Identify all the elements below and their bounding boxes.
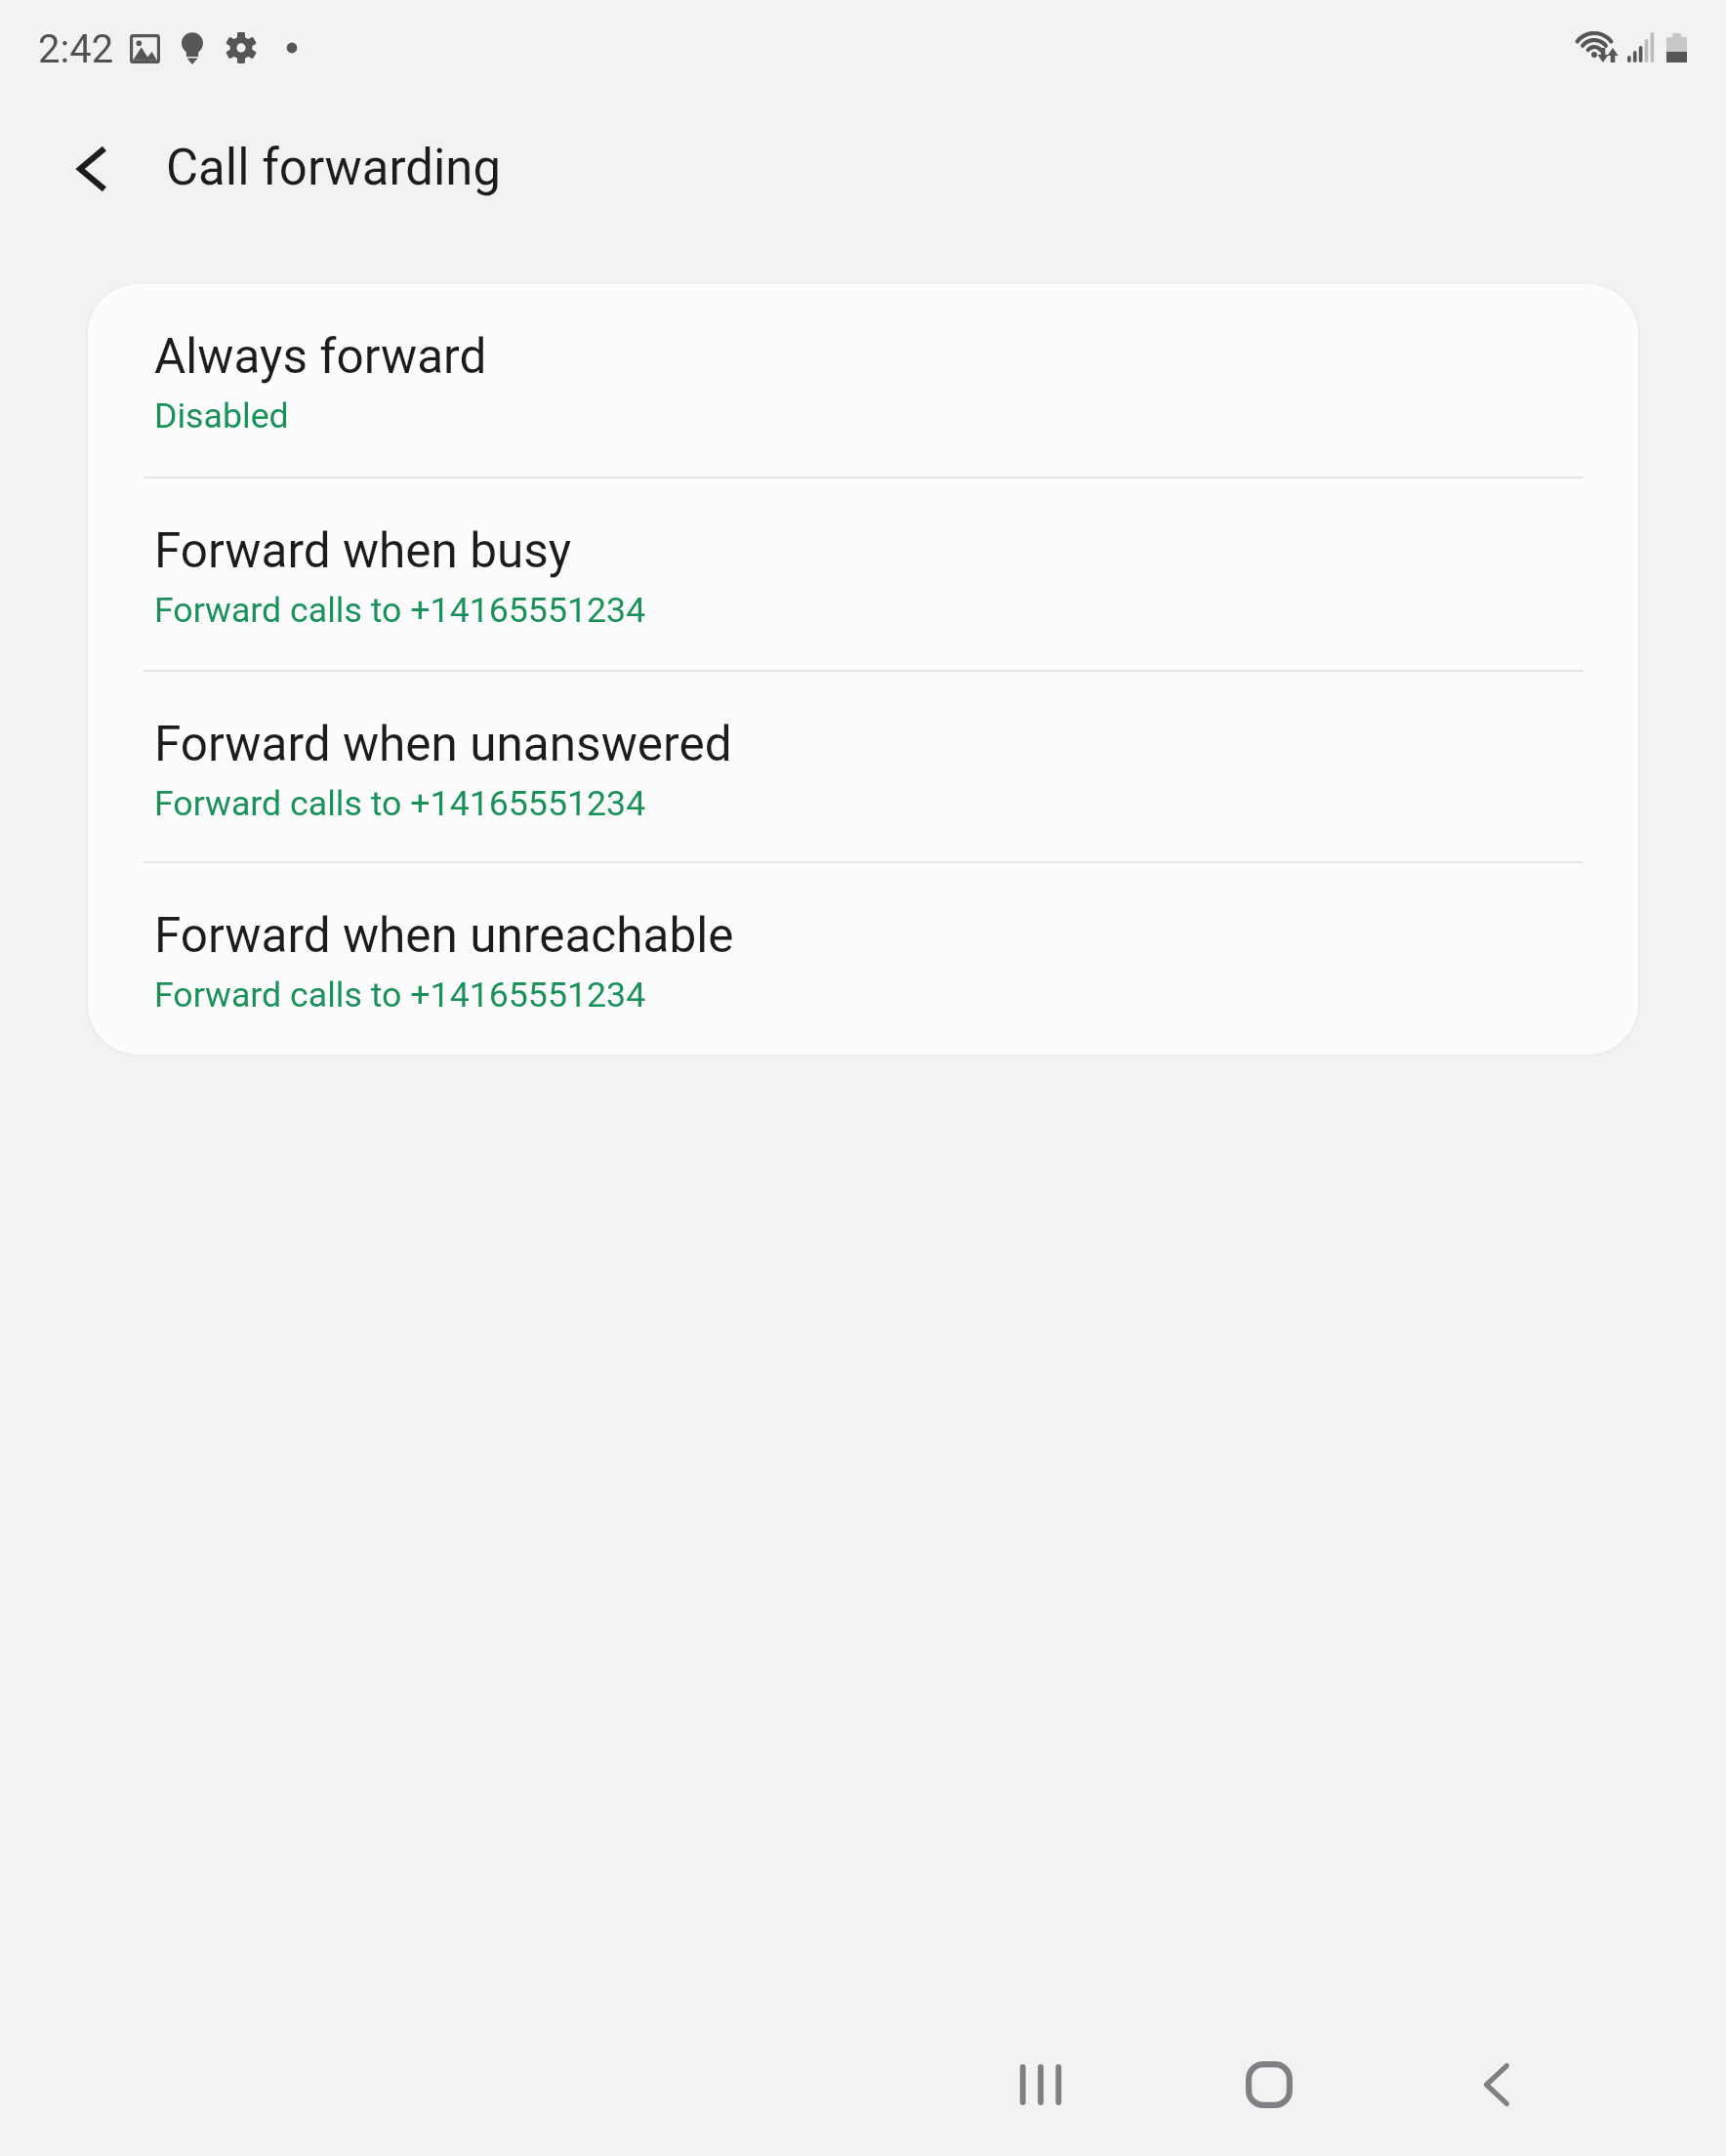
staticText: 2:42 <box>38 26 114 72</box>
staticText: Always forward <box>154 328 487 385</box>
button[interactable]: Always forward <box>88 284 1638 478</box>
staticText: Forward when unreachable <box>154 907 734 964</box>
button[interactable]: Home <box>1211 2026 1328 2143</box>
staticText: Forward when unanswered <box>154 716 732 772</box>
button[interactable]: Forward when unanswered <box>88 672 1638 863</box>
button[interactable]: Recent apps <box>982 2026 1099 2143</box>
staticText: Forward calls to +14165551234 <box>154 590 646 631</box>
button[interactable]: Forward when unreachable <box>88 863 1638 1055</box>
staticText: Forward when busy <box>154 522 572 579</box>
staticText: Disabled <box>154 395 289 436</box>
button[interactable]: Back <box>1438 2026 1555 2143</box>
staticText: Call forwarding <box>166 139 502 197</box>
button[interactable]: Forward when busy <box>88 478 1638 672</box>
button[interactable]: Navigate up <box>39 127 144 211</box>
staticText: Forward calls to +14165551234 <box>154 783 646 824</box>
staticText: Forward calls to +14165551234 <box>154 974 646 1016</box>
